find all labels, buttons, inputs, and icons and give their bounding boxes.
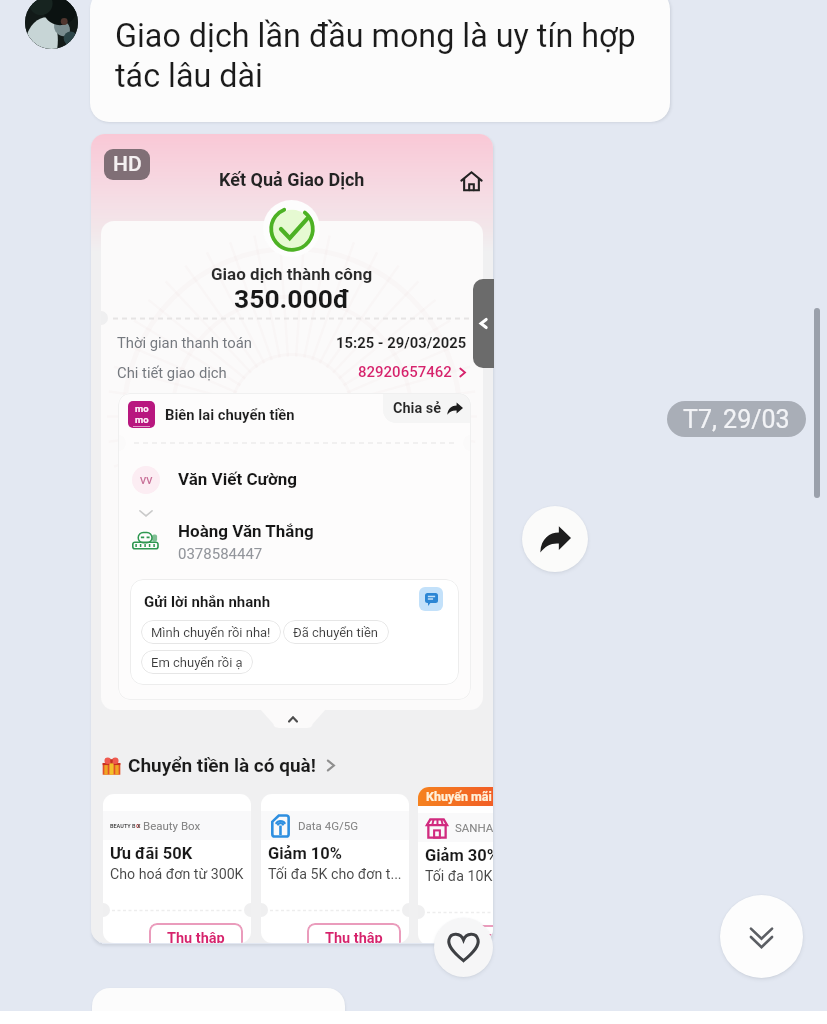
button[interactable]: Home bbox=[460, 170, 483, 193]
staticText: Giao dịch lần đầu mong là uy tín hợp tác… bbox=[115, 17, 636, 95]
staticText: Em chuyển rồi ạ bbox=[151, 655, 243, 670]
staticText: 0378584447 bbox=[178, 545, 263, 563]
staticText: HD bbox=[113, 152, 142, 177]
button[interactable]: Chia sẻ bbox=[383, 393, 471, 423]
button[interactable]: Thu thập bbox=[464, 925, 493, 943]
staticText: 82920657462 bbox=[358, 363, 452, 381]
staticText: T7, 29/03 bbox=[683, 405, 790, 434]
button[interactable]: Mình chuyển rồi nha! bbox=[141, 620, 281, 644]
staticText: Chi tiết giao dịch bbox=[117, 364, 227, 381]
button[interactable]: Data 4G/5G bbox=[261, 794, 409, 943]
staticText: Văn Viết Cường bbox=[178, 469, 298, 489]
staticText: Chia sẻ bbox=[393, 400, 442, 417]
button[interactable]: Forward bbox=[522, 506, 588, 572]
staticText: mo bbox=[135, 414, 149, 425]
button[interactable]: Scroll to bottom bbox=[720, 895, 803, 978]
staticText: mo bbox=[135, 403, 149, 414]
staticText: Tối đa 5K cho đơn t... bbox=[268, 866, 409, 883]
button[interactable]: Thu thập bbox=[149, 923, 243, 943]
staticText: Tối đa 10K bbox=[425, 868, 493, 885]
staticText: Giảm 30% bbox=[425, 846, 493, 865]
button[interactable]: Em chuyển rồi ạ bbox=[141, 650, 253, 674]
button[interactable]: T7, 29/03 bbox=[667, 401, 806, 437]
staticText: Ưu đãi 50K bbox=[110, 844, 193, 863]
button[interactable]: Khuyến mãi đ bbox=[418, 787, 493, 943]
staticText: Biên lai chuyển tiền bbox=[165, 406, 295, 423]
staticText: 15:25 - 29/03/2025 bbox=[336, 334, 467, 351]
button[interactable]: Giao dịch lần đầu mong là uy tín hợp tác… bbox=[90, 0, 670, 122]
button[interactable]: BEAUTY bbox=[103, 794, 251, 943]
staticText: Hoàng Văn Thắng bbox=[178, 521, 314, 541]
button[interactable]: Write message bbox=[419, 587, 443, 611]
button[interactable]: Previous bbox=[473, 279, 494, 368]
staticText: Đã chuyển tiền bbox=[293, 625, 379, 640]
staticText: BEAUTY bbox=[110, 823, 131, 829]
button[interactable]: Collapse bbox=[260, 709, 326, 728]
staticText: Mình chuyển rồi nha! bbox=[151, 625, 271, 640]
staticText: Thời gian thanh toán bbox=[117, 334, 252, 351]
button[interactable]: Shared transaction screenshot bbox=[91, 134, 493, 943]
staticText: VV bbox=[140, 475, 153, 486]
staticText: Khuyến mãi đ bbox=[426, 789, 493, 804]
button[interactable]: Thu thập bbox=[307, 923, 401, 943]
staticText: Data 4G/5G bbox=[298, 819, 359, 832]
staticText: 350.000đ bbox=[234, 283, 350, 314]
staticText: O bbox=[136, 823, 137, 829]
button[interactable]: Like bbox=[434, 918, 493, 977]
staticText: SANHA bbox=[455, 821, 493, 834]
staticText: Thu thập bbox=[482, 932, 493, 943]
staticText: Kết Quả Giao Dịch bbox=[219, 169, 365, 190]
button[interactable]: Đã chuyển tiền bbox=[283, 620, 389, 644]
staticText: Giao dịch thành công bbox=[211, 264, 373, 284]
staticText: Chuyển tiền là có quà! bbox=[128, 754, 316, 776]
button[interactable]: Avatar bbox=[25, 0, 78, 49]
staticText: Gửi lời nhắn nhanh bbox=[144, 593, 271, 611]
staticText: Thu thập bbox=[167, 930, 225, 943]
staticText: Cho hoá đơn từ 300K bbox=[110, 866, 251, 883]
staticText: B bbox=[132, 823, 136, 829]
button[interactable]: Message bbox=[92, 988, 345, 1024]
staticText: Thu thập bbox=[325, 930, 383, 943]
staticText: Beauty Box bbox=[143, 819, 201, 832]
staticText: Giảm 10% bbox=[268, 844, 342, 863]
